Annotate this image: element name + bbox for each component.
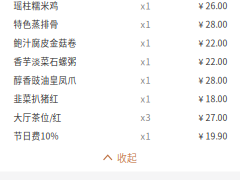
staticText: 香芋淡菜石螺粥 xyxy=(13,55,76,67)
staticText: x1 xyxy=(140,73,150,86)
staticText: 收起 xyxy=(117,150,137,165)
staticText: ¥ 22.00 xyxy=(198,55,227,67)
staticText: 鲍汁腐皮金菇卷 xyxy=(13,36,76,49)
staticText: ¥ 28.00 xyxy=(198,18,227,30)
staticText: x1 xyxy=(140,36,150,49)
staticText: 瑶柱糯米鸡 xyxy=(13,0,58,12)
staticText: ¥ 27.00 xyxy=(198,111,227,123)
staticText: ¥ 28.00 xyxy=(198,74,227,86)
staticText: 大厅茶位/红 xyxy=(13,111,61,123)
staticText: x1 xyxy=(140,92,150,105)
staticText: x1 xyxy=(140,55,150,68)
button[interactable]: 收起 xyxy=(0,145,240,170)
staticText: x1 xyxy=(140,17,150,31)
staticText: ¥ 26.00 xyxy=(198,0,227,12)
staticText: x3 xyxy=(140,111,150,124)
staticText: x1 xyxy=(140,129,150,142)
staticText: 特色蒸排骨 xyxy=(13,18,58,30)
staticText: ¥ 22.00 xyxy=(198,36,227,49)
staticText: 韭菜扒猪红 xyxy=(13,92,58,105)
staticText: 节日费10% xyxy=(13,129,58,142)
staticText: ¥ 18.00 xyxy=(198,92,227,105)
staticText: 醇香豉油皇凤爪 xyxy=(13,74,76,86)
staticText: ¥ 19.90 xyxy=(198,129,227,142)
staticText: x1 xyxy=(140,0,150,12)
